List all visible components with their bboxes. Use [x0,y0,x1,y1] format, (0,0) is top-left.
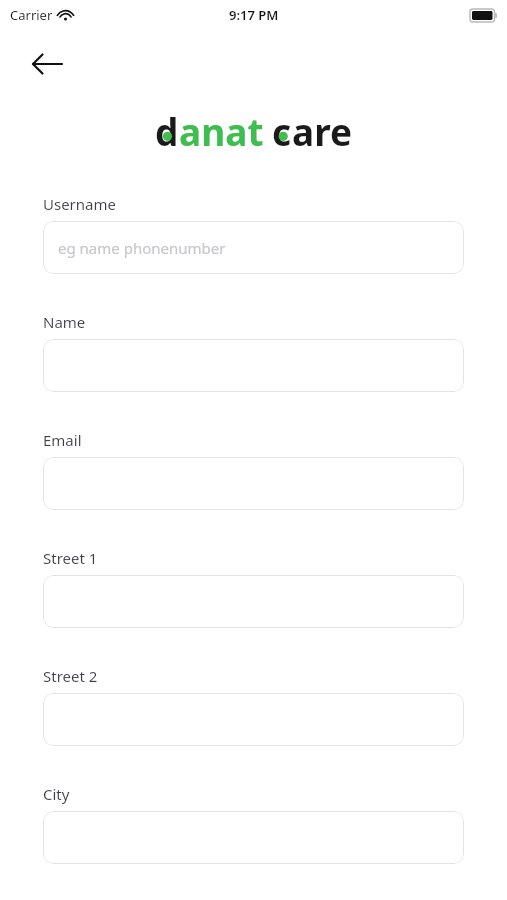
staticText: Street 1 [43,548,98,568]
staticText: Name [43,312,86,332]
staticText: Carrier [10,6,53,24]
staticText: Street 2 [43,666,98,686]
staticText: 9:17 PM [229,6,279,24]
button[interactable]: Back [20,44,76,84]
staticText: are [292,106,353,152]
button[interactable] [43,457,464,510]
button[interactable] [43,811,464,864]
staticText: eg name phonenumber [58,238,226,258]
staticText: Email [43,430,82,450]
button[interactable]: eg name phonenumber [43,221,464,274]
staticText: d [155,106,179,152]
button[interactable] [43,575,464,628]
staticText: c [272,106,292,152]
button[interactable] [43,693,464,746]
staticText: City [43,784,70,804]
staticText: Username [43,194,116,214]
button[interactable] [43,339,464,392]
staticText: anat [179,106,264,152]
